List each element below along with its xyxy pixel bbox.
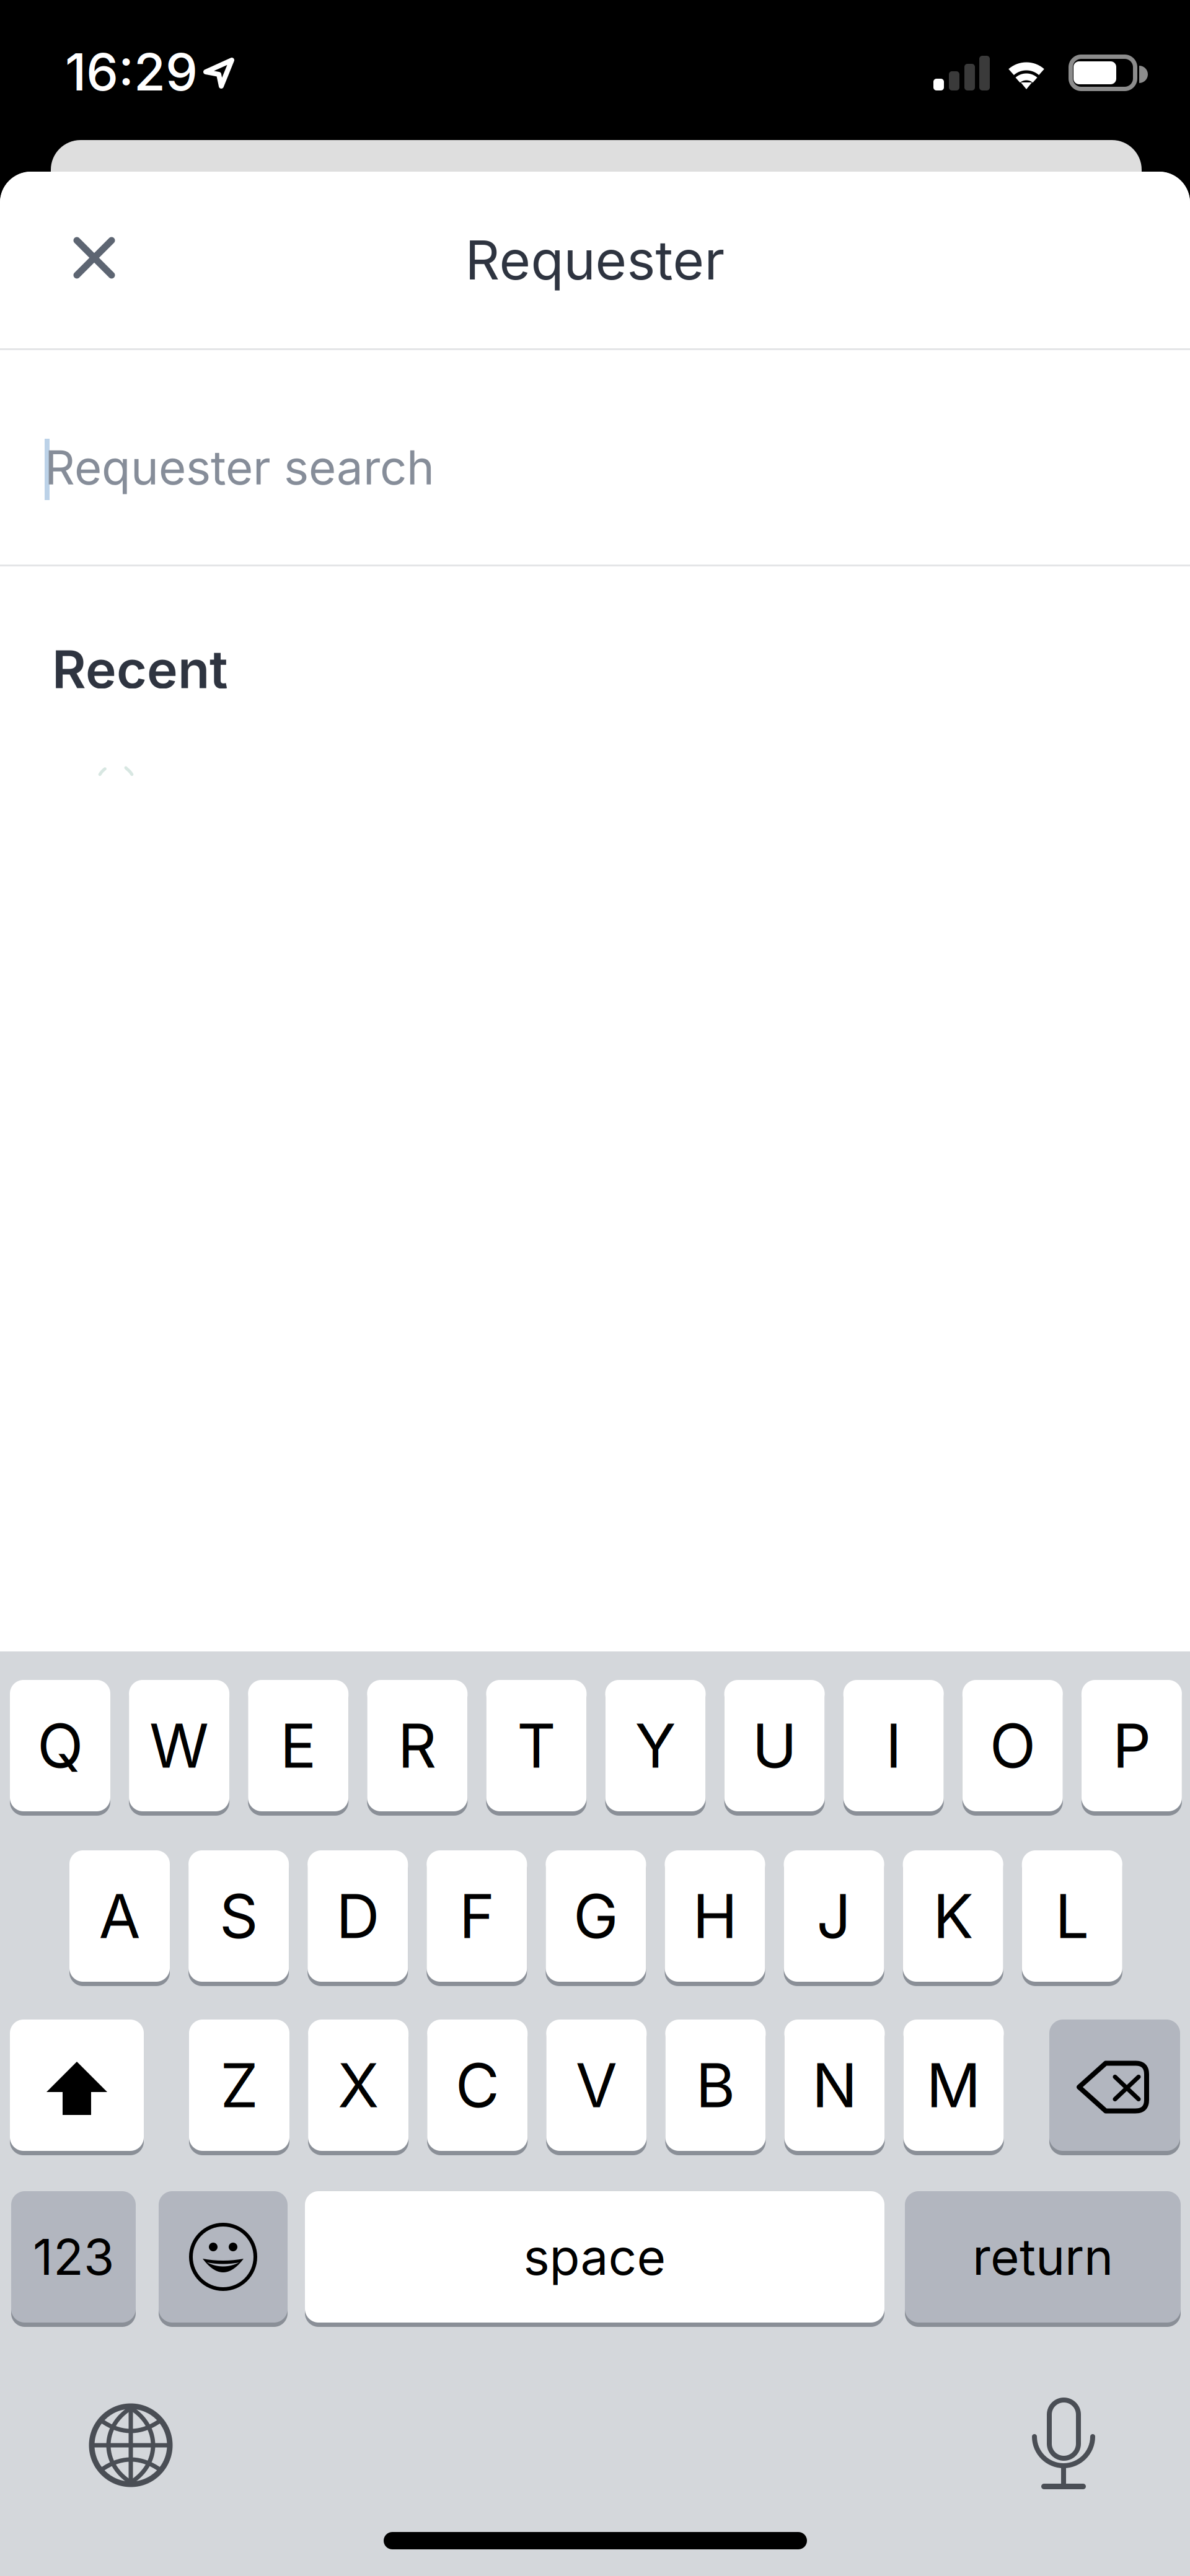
staticText: 123	[33, 2227, 114, 2287]
staticText: V	[576, 2049, 617, 2122]
staticText: return	[972, 2227, 1113, 2287]
button[interactable]: G	[546, 1850, 646, 1987]
button[interactable]: U	[724, 1680, 825, 1816]
staticText: Requester search	[45, 439, 434, 496]
staticText: F	[459, 1880, 494, 1953]
button[interactable]: Z	[189, 2020, 289, 2156]
staticText: Z	[220, 2049, 258, 2122]
staticText: N	[812, 2049, 857, 2122]
staticText: Requester	[465, 227, 725, 292]
staticText: U	[752, 1709, 797, 1782]
staticText: D	[336, 1880, 379, 1953]
button[interactable]: M	[903, 2020, 1004, 2156]
staticText: S	[219, 1880, 258, 1953]
button[interactable]: P	[1081, 1680, 1182, 1816]
staticText: X	[338, 2049, 379, 2122]
button[interactable]: Next keyboard	[78, 2393, 183, 2498]
staticText: B	[696, 2049, 735, 2122]
staticText: L	[1055, 1880, 1089, 1953]
button[interactable]: Close	[38, 201, 149, 313]
staticText: I	[885, 1709, 902, 1782]
button[interactable]: R	[367, 1680, 468, 1816]
button[interactable]: V	[546, 2020, 647, 2156]
staticText: M	[926, 2049, 981, 2122]
button[interactable]: C	[427, 2020, 528, 2156]
button[interactable]: space	[305, 2191, 884, 2328]
button[interactable]: O	[962, 1680, 1063, 1816]
button[interactable]: H	[665, 1850, 765, 1987]
button[interactable]: F	[427, 1850, 527, 1987]
staticText: G	[573, 1880, 618, 1953]
staticText: W	[149, 1709, 209, 1782]
staticText: space	[523, 2227, 666, 2287]
staticText: H	[693, 1880, 737, 1953]
staticText: K	[933, 1880, 973, 1953]
staticText: E	[280, 1709, 317, 1782]
button[interactable]: Shift	[10, 2020, 144, 2156]
button[interactable]: W	[129, 1680, 229, 1816]
staticText: C	[455, 2049, 499, 2122]
button[interactable]: D	[308, 1850, 408, 1987]
button[interactable]: E	[248, 1680, 348, 1816]
staticText: Recent	[52, 638, 228, 701]
staticText: P	[1112, 1709, 1151, 1782]
button[interactable]: Delete	[1049, 2020, 1180, 2156]
staticText: R	[398, 1709, 437, 1782]
button[interactable]: Q	[10, 1680, 110, 1816]
button[interactable]: J	[784, 1850, 884, 1987]
button[interactable]: B	[665, 2020, 766, 2156]
button[interactable]: Dictate	[1019, 2398, 1124, 2503]
button[interactable]: I	[843, 1680, 944, 1816]
button[interactable]: Emoji	[159, 2191, 288, 2328]
button[interactable]: X	[308, 2020, 409, 2156]
staticText: Y	[635, 1709, 676, 1782]
button[interactable]: L	[1022, 1850, 1122, 1987]
staticText: A	[99, 1880, 140, 1953]
staticText: T	[517, 1709, 556, 1782]
staticText: Q	[37, 1709, 83, 1782]
staticText: O	[990, 1709, 1036, 1782]
button[interactable]: K	[903, 1850, 1003, 1987]
button[interactable]: Y	[605, 1680, 706, 1816]
button[interactable]: N	[784, 2020, 885, 2156]
button[interactable]: A	[69, 1850, 170, 1987]
staticText: J	[817, 1880, 851, 1953]
button[interactable]: return	[905, 2191, 1181, 2328]
button[interactable]: T	[486, 1680, 587, 1816]
button[interactable]: 123	[11, 2191, 136, 2328]
button[interactable]: S	[188, 1850, 289, 1987]
staticText: 16:29	[65, 41, 198, 103]
